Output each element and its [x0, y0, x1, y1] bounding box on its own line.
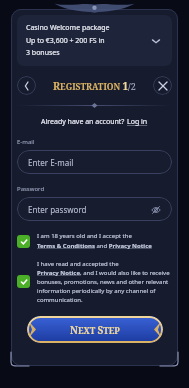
staticText: Password — [17, 185, 45, 193]
button[interactable]: Enter password — [17, 197, 172, 221]
staticText: I have read and accepted the Privacy Not… — [37, 260, 172, 303]
button[interactable]: Enter E-mail — [17, 150, 172, 174]
staticText: NEXT STEP — [70, 323, 120, 337]
staticText: Casino Welcome package — [26, 23, 110, 33]
staticText: Terms & Conditions and Privacy Notice — [37, 242, 152, 250]
button[interactable]: Back — [17, 76, 36, 95]
button[interactable]: I have read and accepted the Privacy Not… — [17, 260, 172, 303]
button[interactable]: I am 18 years old and I accept the — [17, 232, 172, 250]
button[interactable]: NEXT STEP — [27, 316, 163, 343]
staticText: I am 18 years old and I accept the — [37, 232, 132, 240]
staticText: Log in — [127, 117, 148, 127]
button[interactable]: Log in — [127, 117, 148, 127]
staticText: Already have an account? — [41, 117, 127, 127]
staticText: E-mail — [17, 138, 35, 146]
staticText: 3 bonuses — [26, 48, 60, 58]
staticText: Enter E-mail — [28, 157, 74, 168]
staticText: Enter password — [28, 204, 87, 215]
staticText: Up to €3,600 + 200 FS in — [26, 36, 105, 46]
staticText: REGISTRATION 1/2 — [53, 79, 136, 93]
button[interactable]: Casino Welcome package — [17, 15, 172, 66]
button[interactable]: Show password — [150, 204, 161, 215]
button[interactable]: Close — [153, 76, 172, 95]
